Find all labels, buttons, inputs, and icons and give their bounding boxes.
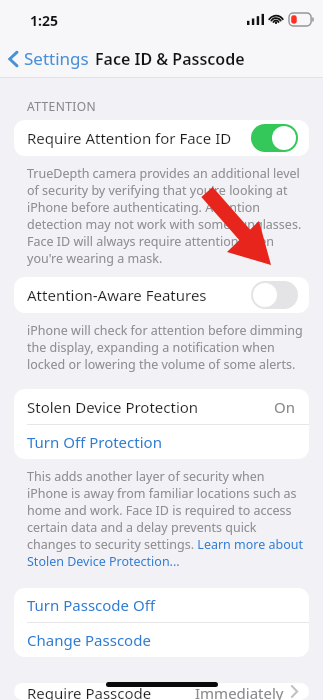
button[interactable]: Require Attention for Face ID, on — [251, 124, 298, 152]
staticText: This adds another layer of security when… — [27, 468, 306, 570]
button[interactable]: Require Attention for Face ID — [14, 120, 309, 156]
button[interactable]: Turn Off Protection — [14, 425, 309, 459]
button[interactable]: Attention-Aware Features, off — [251, 281, 298, 309]
staticText: Attention-Aware Features — [27, 285, 251, 305]
staticText: Turn Off Protection — [27, 432, 162, 452]
staticText: Face ID & Passcode — [95, 48, 245, 70]
staticText: Stolen Device Protection — [27, 397, 274, 417]
staticText: TrueDepth camera provides an additional … — [27, 165, 303, 267]
staticText: Settings — [24, 47, 89, 70]
button[interactable]: Attention-Aware Features — [14, 277, 309, 313]
staticText: Immediately — [195, 683, 284, 700]
staticText: On — [274, 397, 295, 417]
staticText: ATTENTION — [27, 98, 97, 114]
button[interactable]: Change Passcode — [14, 623, 309, 657]
staticText: Turn Passcode Off — [27, 595, 155, 615]
staticText: Require Attention for Face ID — [27, 128, 251, 148]
button[interactable]: Require Passcode — [14, 683, 309, 700]
staticText: Require Passcode — [27, 683, 195, 700]
button[interactable]: Turn Passcode Off — [14, 588, 309, 622]
staticText: iPhone will check for attention before d… — [27, 322, 303, 373]
staticText: 1:25 — [30, 11, 58, 30]
staticText: Change Passcode — [27, 630, 151, 650]
button[interactable]: Stolen Device Protection — [14, 389, 309, 424]
button[interactable]: Settings — [0, 42, 95, 75]
